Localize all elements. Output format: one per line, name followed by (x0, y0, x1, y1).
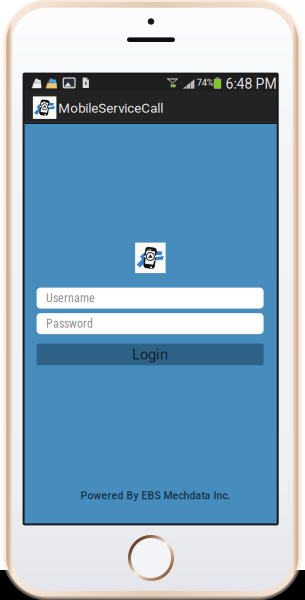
staticText: Password (46, 317, 93, 331)
staticText: 6:48 PM (225, 76, 276, 92)
staticText: Username (46, 291, 95, 305)
staticText: 74% (197, 77, 214, 88)
button[interactable]: Login (37, 344, 264, 365)
staticText: Login (132, 346, 168, 363)
staticText: Powered By EBS Mechdata Inc. (81, 490, 231, 502)
staticText: MobileServiceCall (58, 100, 163, 116)
